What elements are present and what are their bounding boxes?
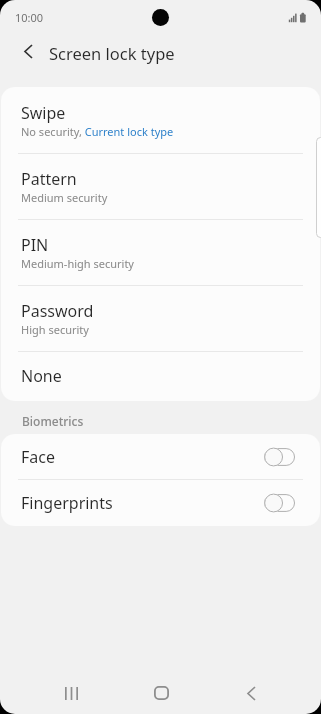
staticText: Medium security	[21, 190, 108, 205]
button[interactable]: Back	[12, 35, 44, 67]
staticText: No security, Current lock type	[21, 124, 174, 139]
staticText: Biometrics	[22, 413, 84, 429]
staticText: None	[21, 365, 62, 387]
staticText: PIN	[21, 234, 49, 256]
button[interactable]: Recent apps	[55, 677, 87, 709]
staticText: Pattern	[21, 168, 77, 190]
staticText: Medium-high security	[21, 256, 134, 271]
staticText: Password	[21, 300, 94, 322]
button[interactable]: Swipe	[1, 87, 320, 153]
button[interactable]: None	[1, 351, 320, 401]
staticText: Face	[21, 446, 55, 468]
button[interactable]: Pattern	[1, 153, 320, 219]
staticText: Fingerprints	[21, 492, 113, 514]
button[interactable]: PIN	[1, 219, 320, 285]
button[interactable]: Face	[1, 434, 320, 479]
staticText: Screen lock type	[49, 42, 175, 64]
staticText: High security	[21, 322, 89, 337]
staticText: 10:00	[15, 10, 44, 25]
button[interactable]: Fingerprints	[1, 479, 320, 526]
button[interactable]: Back	[235, 677, 267, 709]
button[interactable]: Password	[1, 285, 320, 351]
button[interactable]: Home	[145, 677, 177, 709]
staticText: Swipe	[21, 102, 66, 124]
